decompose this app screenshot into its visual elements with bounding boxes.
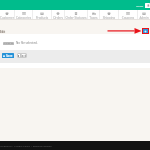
staticText: Orders — [52, 16, 64, 21]
button[interactable]: Add image — [143, 29, 148, 33]
staticText: Categories — [15, 16, 32, 21]
button[interactable]: Products — [33, 10, 51, 20]
staticText: Conditions | Privacy Policy | Desktop Ve… — [0, 144, 52, 147]
button[interactable]: Admin — [135, 4, 145, 7]
button[interactable]: Save — [2, 53, 14, 58]
button[interactable]: Taxes — [88, 10, 99, 20]
button[interactable]: Shipping — [100, 10, 118, 20]
staticText: Customers — [0, 16, 14, 21]
button[interactable]: Back — [17, 53, 27, 58]
button[interactable]: Browse — [3, 42, 14, 45]
button[interactable]: Profile menu — [145, 3, 150, 8]
button[interactable]: Customers — [0, 10, 14, 20]
staticText: Coupons — [119, 16, 137, 21]
staticText: Browse — [4, 42, 14, 45]
staticText: Products — [33, 16, 51, 21]
button[interactable]: Orders — [52, 10, 64, 20]
button[interactable]: Categories — [15, 10, 32, 20]
button[interactable]: Admin Reset / Setup — [138, 10, 150, 20]
staticText: Shipping — [100, 16, 118, 21]
staticText: Taxes — [88, 16, 99, 21]
button[interactable]: Coupons — [119, 10, 137, 20]
staticText: Admin Reset / Setup — [138, 16, 150, 21]
staticText: Save — [6, 54, 13, 58]
button[interactable]: Order Statuses Settings — [65, 10, 87, 20]
staticText: No file selected. — [16, 41, 38, 45]
staticText: Back — [20, 54, 27, 58]
staticText: Edit — [0, 30, 6, 34]
staticText: Admin — [136, 4, 144, 7]
staticText: Order Statuses Settings — [65, 16, 87, 21]
